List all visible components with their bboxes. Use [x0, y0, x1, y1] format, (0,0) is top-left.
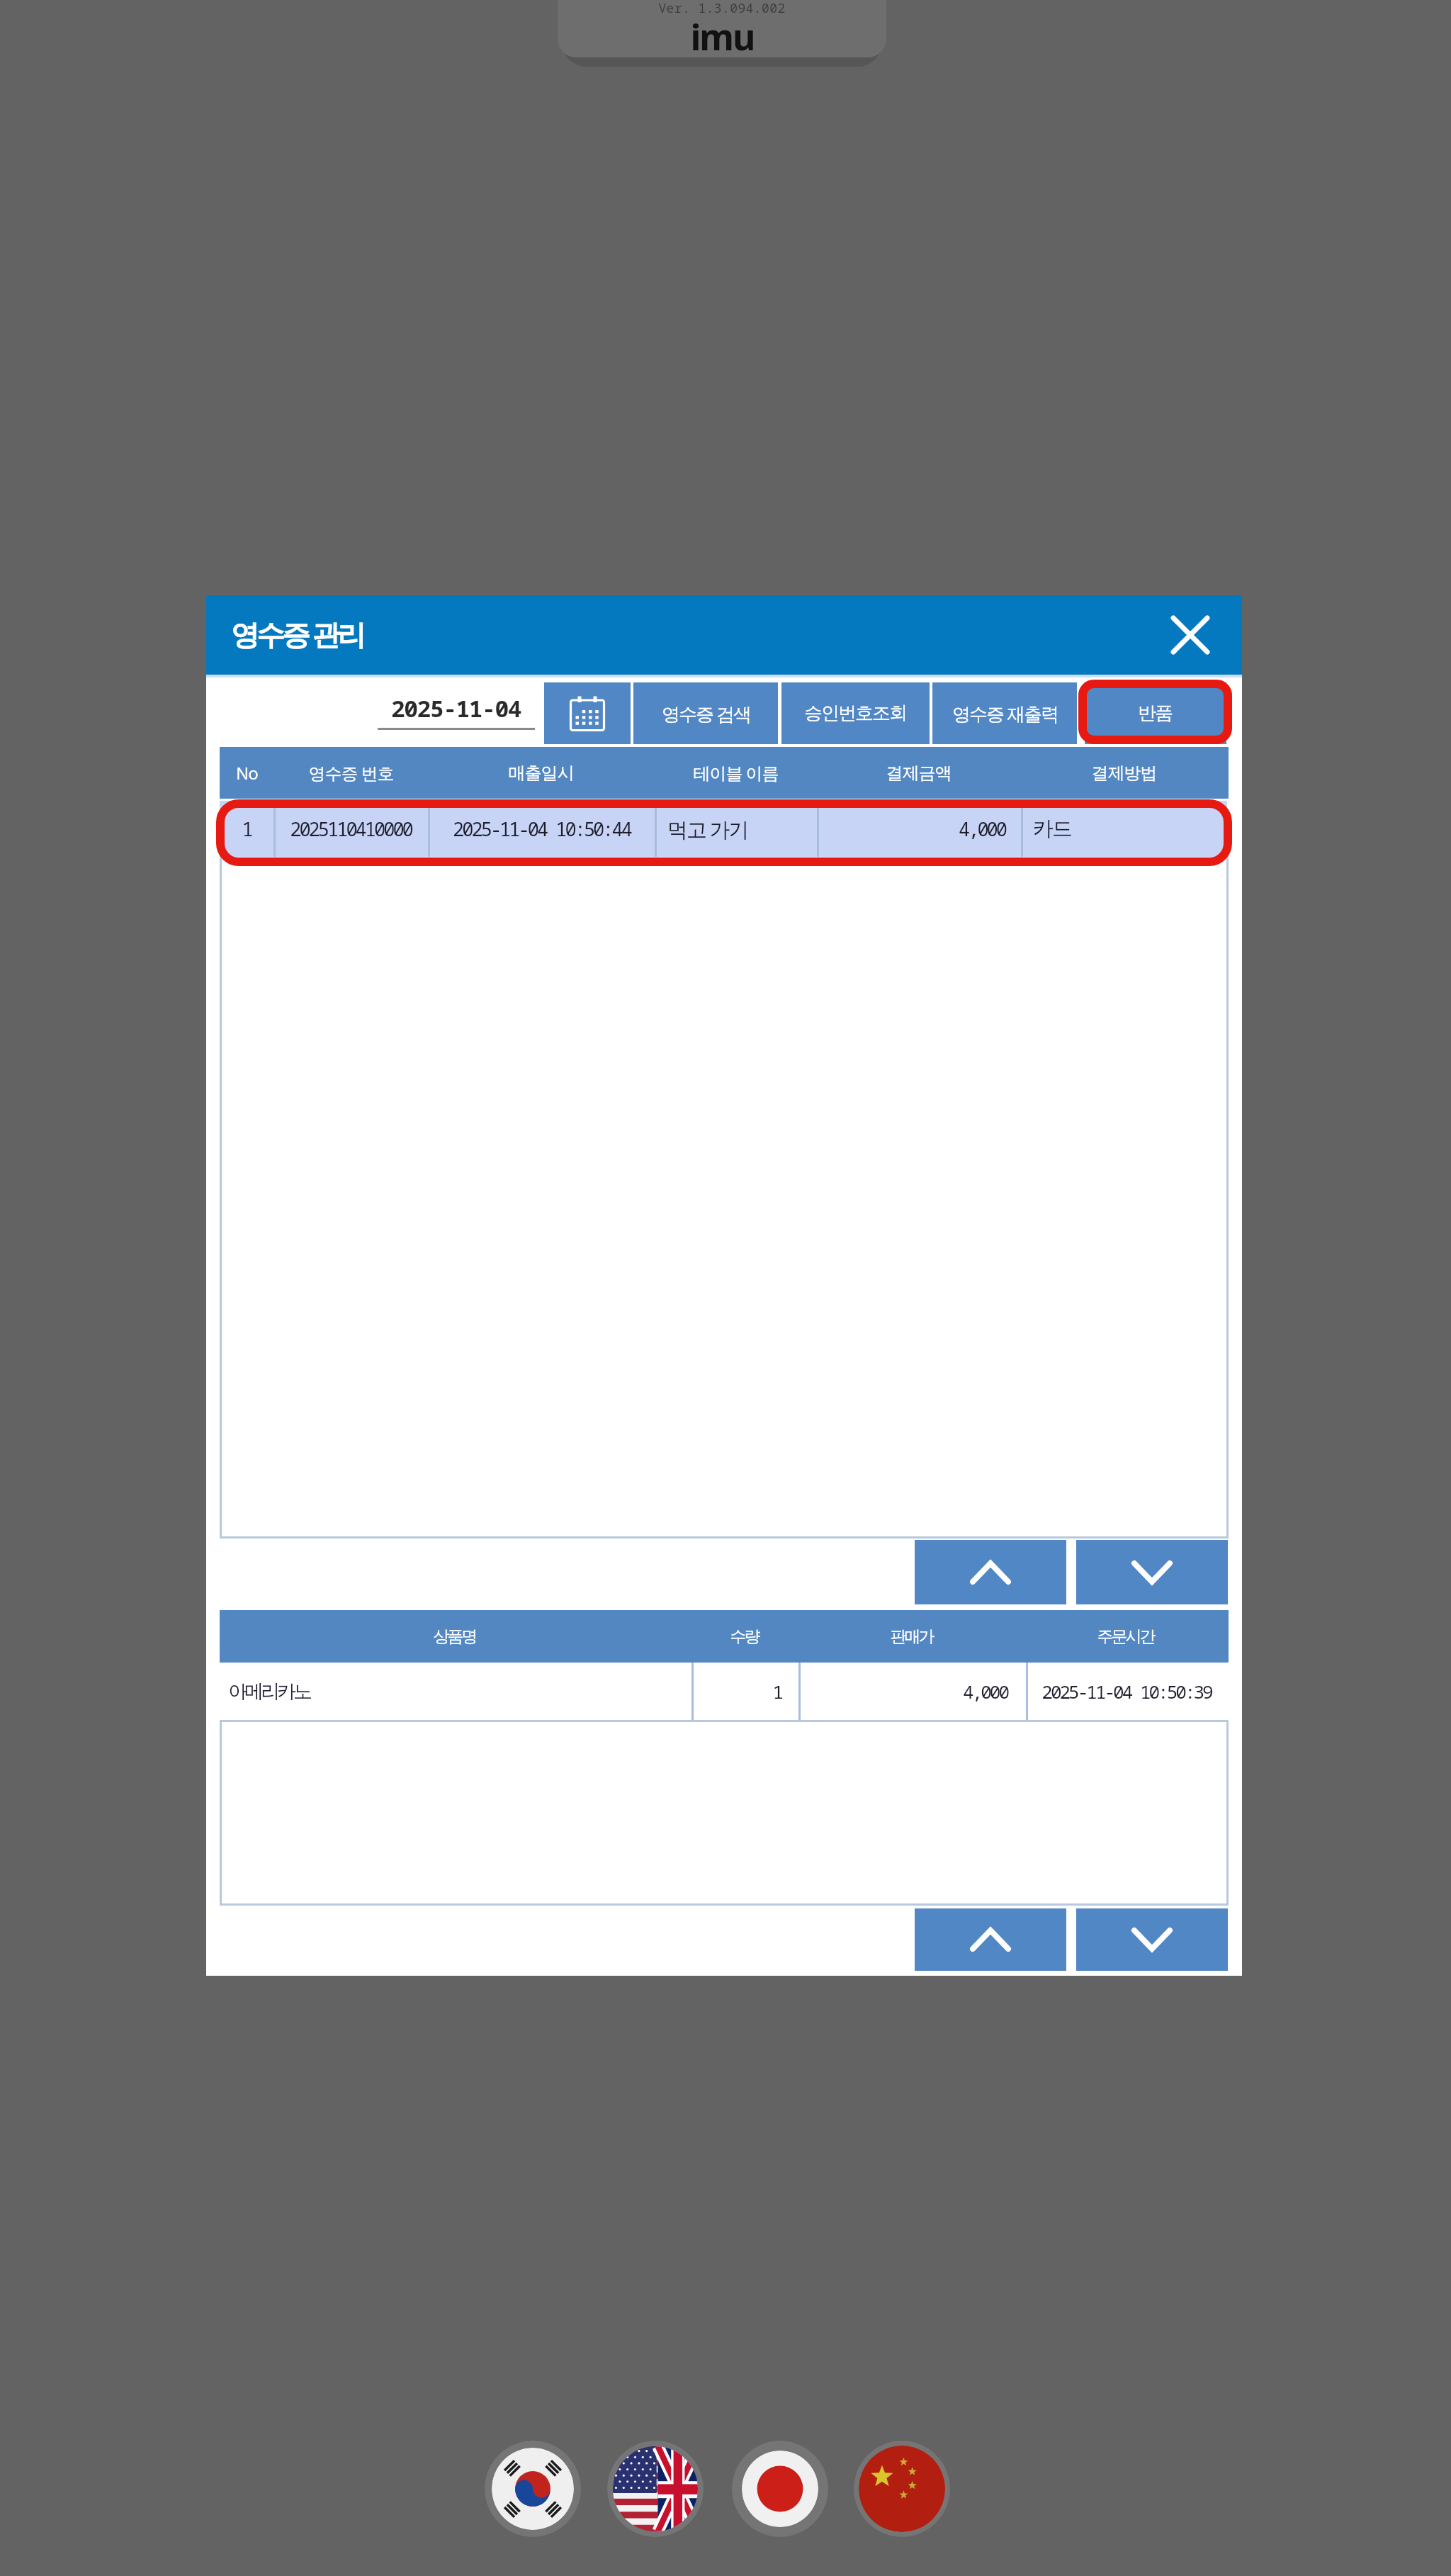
staticText: 주문시간 — [1098, 1626, 1155, 1647]
staticText: 결제방법 — [1092, 763, 1157, 784]
button[interactable]: 2025-11-04 — [378, 685, 535, 731]
staticText: 영수증 검색 — [662, 701, 750, 726]
staticText: Ver. 1.3.094.002 — [658, 0, 786, 17]
button[interactable]: Close — [1159, 604, 1221, 666]
button[interactable]: 영수증 재출력 — [932, 682, 1077, 744]
button[interactable] — [220, 801, 1227, 857]
staticText: No — [236, 761, 258, 784]
staticText: 승인번호조회 — [805, 702, 907, 725]
staticText: 결제금액 — [886, 763, 952, 784]
staticText: 반품 — [1139, 702, 1173, 725]
staticText: 2025-11-04 — [391, 692, 521, 724]
staticText: 영수증 번호 — [308, 761, 394, 784]
button[interactable]: Scroll up — [915, 1540, 1066, 1604]
staticText: imu — [690, 13, 755, 52]
staticText: 수량 — [731, 1626, 760, 1647]
staticText: 1 — [772, 1679, 781, 1704]
staticText: 먹고 가기 — [667, 815, 748, 843]
button[interactable]: Chinese — [854, 2441, 950, 2537]
button[interactable]: Korean — [485, 2441, 581, 2537]
button[interactable]: English — [607, 2441, 704, 2537]
button[interactable] — [220, 1663, 1229, 1720]
staticText: 영수증 재출력 — [952, 701, 1058, 726]
staticText: 2025-11-04 10:50:44 — [453, 816, 631, 842]
staticText: 4,000 — [962, 1679, 1007, 1704]
staticText: 4,000 — [959, 816, 1005, 842]
button[interactable]: Japanese — [732, 2441, 828, 2537]
staticText: 1 — [242, 816, 252, 842]
staticText: 판매가 — [891, 1626, 934, 1647]
button[interactable]: Scroll up — [915, 1908, 1066, 1971]
button[interactable]: 영수증 검색 — [633, 682, 778, 744]
staticText: 테이블 이름 — [693, 761, 779, 784]
button[interactable]: 반품 — [1085, 682, 1226, 744]
staticText: 아메리카노 — [230, 1680, 311, 1704]
staticText: 매출일시 — [509, 763, 574, 784]
button[interactable]: Scroll down — [1076, 1540, 1228, 1604]
staticText: 영수증 관리 — [231, 614, 363, 653]
button[interactable]: Pick date — [544, 682, 631, 744]
staticText: 2025110410000 — [290, 816, 412, 842]
staticText: 카드 — [1034, 816, 1072, 842]
staticText: 상품명 — [434, 1626, 477, 1647]
staticText: 2025-11-04 10:50:39 — [1041, 1679, 1212, 1704]
button[interactable]: 승인번호조회 — [781, 682, 930, 744]
button[interactable]: Scroll down — [1076, 1908, 1228, 1971]
